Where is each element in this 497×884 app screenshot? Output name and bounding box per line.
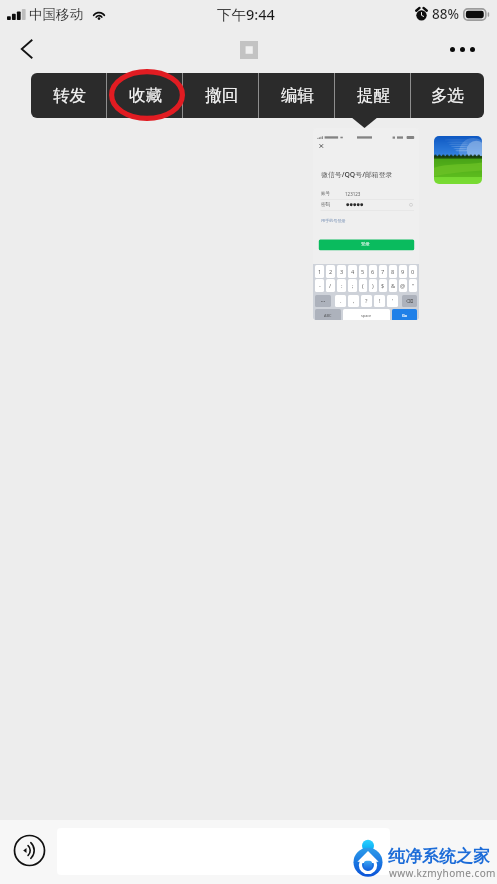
staticText: .	[340, 297, 342, 305]
staticText: 编辑	[281, 85, 314, 106]
staticText: )	[372, 282, 374, 290]
staticText: 2	[329, 268, 333, 276]
staticText: 登录	[361, 241, 370, 246]
staticText: 0	[411, 268, 415, 276]
staticText: 密码	[321, 202, 330, 208]
button[interactable]: 微信号/QQ号/邮箱登录	[313, 128, 419, 320]
staticText: !	[379, 297, 381, 305]
staticText: &	[391, 282, 396, 290]
button[interactable]: 转发	[31, 73, 107, 118]
staticText: 转发	[53, 85, 86, 106]
staticText: 5	[361, 268, 365, 276]
staticText: 纯净系统之家	[388, 846, 490, 867]
staticText: ;	[352, 282, 354, 290]
staticText: 6	[371, 268, 375, 276]
staticText: space	[361, 313, 372, 318]
button[interactable]: 提醒	[335, 73, 411, 118]
button[interactable]: Back	[9, 31, 45, 67]
staticText: 4	[351, 268, 355, 276]
button[interactable]: 撤回	[183, 73, 259, 118]
staticText: •••	[321, 299, 326, 304]
staticText: 撤回	[205, 85, 238, 106]
staticText: ⌫	[406, 298, 414, 304]
staticText: 3	[340, 268, 344, 276]
staticText: 下午9:44	[217, 4, 275, 24]
button[interactable]: 收藏	[107, 73, 183, 118]
button[interactable]: 多选	[411, 73, 484, 118]
button[interactable]: Voice input	[13, 834, 46, 867]
staticText: /	[329, 282, 332, 290]
button[interactable]: 编辑	[259, 73, 335, 118]
staticText: 1	[318, 268, 322, 276]
staticText: 收藏	[129, 85, 162, 106]
staticText: ABC	[324, 313, 332, 318]
staticText: '	[392, 297, 394, 305]
staticText: 账号	[321, 191, 330, 197]
staticText: 多选	[431, 85, 464, 106]
staticText: 微信号/QQ号/邮箱登录	[321, 170, 393, 179]
button[interactable]	[434, 136, 482, 184]
button[interactable]: More options	[442, 31, 482, 67]
staticText: -	[319, 282, 321, 290]
staticText: ,	[353, 297, 355, 305]
staticText: www.kzmyhome.com	[389, 866, 496, 880]
staticText: 9	[401, 268, 405, 276]
staticText: 提醒	[357, 85, 390, 106]
staticText: 7	[381, 268, 385, 276]
staticText: 中国移动	[29, 6, 83, 23]
staticText: 88%	[432, 5, 459, 23]
staticText: @	[400, 282, 406, 290]
staticText: $	[381, 282, 385, 290]
staticText: "	[412, 282, 415, 290]
staticText: 用手机号登录	[321, 218, 346, 223]
button[interactable]	[57, 828, 390, 875]
staticText: ?	[365, 297, 368, 305]
staticText: 8	[391, 268, 395, 276]
staticText: :	[341, 282, 343, 290]
staticText: 123123	[345, 191, 361, 197]
staticText: Go	[402, 313, 408, 318]
staticText: (	[362, 282, 364, 290]
